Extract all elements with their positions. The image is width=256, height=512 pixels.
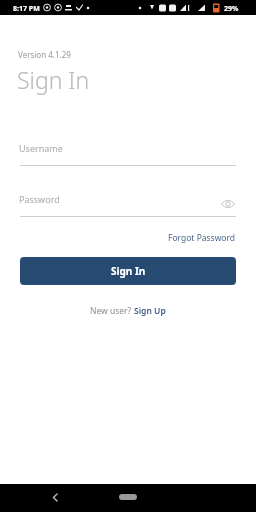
staticText: Sign In: [17, 64, 90, 95]
staticText: 8:17 PM: [13, 4, 40, 14]
button[interactable]: Sign In: [20, 257, 236, 285]
staticText: Password: [19, 193, 60, 205]
button[interactable]: [119, 494, 137, 500]
button[interactable]: Username: [20, 140, 236, 166]
staticText: Version 4.1.29: [18, 49, 71, 60]
button[interactable]: Forgot Password: [160, 231, 240, 245]
button[interactable]: Password: [20, 191, 236, 217]
staticText: Sign Up: [134, 305, 166, 317]
button[interactable]: [46, 488, 64, 506]
staticText: Sign In: [111, 264, 146, 278]
staticText: Forgot Password: [168, 232, 236, 244]
staticText: 29%: [224, 4, 239, 14]
staticText: Username: [19, 142, 63, 154]
button[interactable]: New user?: [0, 304, 256, 318]
staticText: New user?: [90, 305, 134, 317]
